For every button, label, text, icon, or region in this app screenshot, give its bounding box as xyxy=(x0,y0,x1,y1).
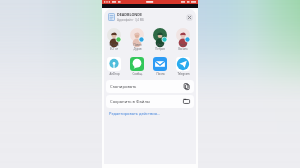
staticText: Аудиофайл · 3,4 МБ xyxy=(117,18,145,22)
button[interactable]: AirDrop xyxy=(104,57,125,79)
button[interactable]: Скопировать xyxy=(106,80,194,93)
staticText: Telegram xyxy=(177,72,190,76)
button[interactable]: Сообщ. xyxy=(126,57,148,79)
staticText: Редактировать действия… xyxy=(109,111,161,116)
button[interactable]: Telegram xyxy=(172,57,194,79)
button[interactable]: Редактировать действия… xyxy=(104,110,196,117)
button[interactable]: Close xyxy=(186,14,193,21)
staticText: Скопировать xyxy=(110,84,137,90)
staticText: DEADBLONDE xyxy=(117,12,143,17)
button[interactable]: Татар Василь xyxy=(172,28,194,54)
button[interactable]: Почта xyxy=(149,57,171,79)
staticText: Почта xyxy=(156,72,165,76)
button[interactable]: СТ имя ЕСТ от xyxy=(104,28,125,54)
button[interactable]: Иван Петров xyxy=(149,28,171,54)
button[interactable]: Сохранить в Файлы xyxy=(106,95,194,108)
button[interactable]: Павел Дуров xyxy=(126,28,148,54)
button[interactable]: DEADBLONDE xyxy=(104,9,196,25)
staticText: AirDrop xyxy=(109,72,120,76)
staticText: Иван Петров xyxy=(155,43,165,50)
staticText: Татар Василь xyxy=(178,43,188,50)
staticText: Павел Дуров xyxy=(133,43,142,50)
staticText: Сообщ. xyxy=(132,72,143,76)
staticText: СТ имя ЕСТ от xyxy=(109,43,119,50)
staticText: Сохранить в Файлы xyxy=(110,99,151,105)
